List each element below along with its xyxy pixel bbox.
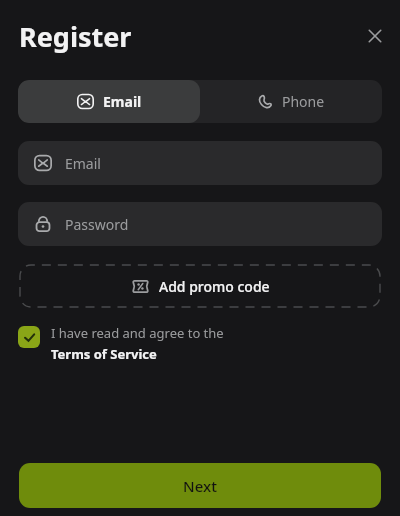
button[interactable]: Phone — [200, 80, 382, 123]
staticText: Add promo code — [159, 277, 270, 296]
button[interactable]: Email — [18, 80, 200, 123]
button[interactable]: Next — [19, 463, 381, 508]
button[interactable]: Email — [18, 141, 382, 185]
staticText: Phone — [282, 92, 325, 111]
staticText: Password — [65, 215, 129, 234]
button[interactable]: Add promo code — [19, 264, 381, 308]
button[interactable]: Password — [18, 202, 382, 246]
staticText: I have read and agree to the — [51, 324, 224, 342]
button[interactable]: I have read and agree to the — [18, 324, 224, 363]
staticText: Next — [183, 476, 217, 496]
staticText: Terms of Service — [51, 345, 157, 363]
button[interactable]: Close — [358, 19, 392, 53]
staticText: Email — [65, 154, 101, 173]
staticText: Register — [19, 18, 132, 55]
staticText: Email — [103, 92, 142, 111]
